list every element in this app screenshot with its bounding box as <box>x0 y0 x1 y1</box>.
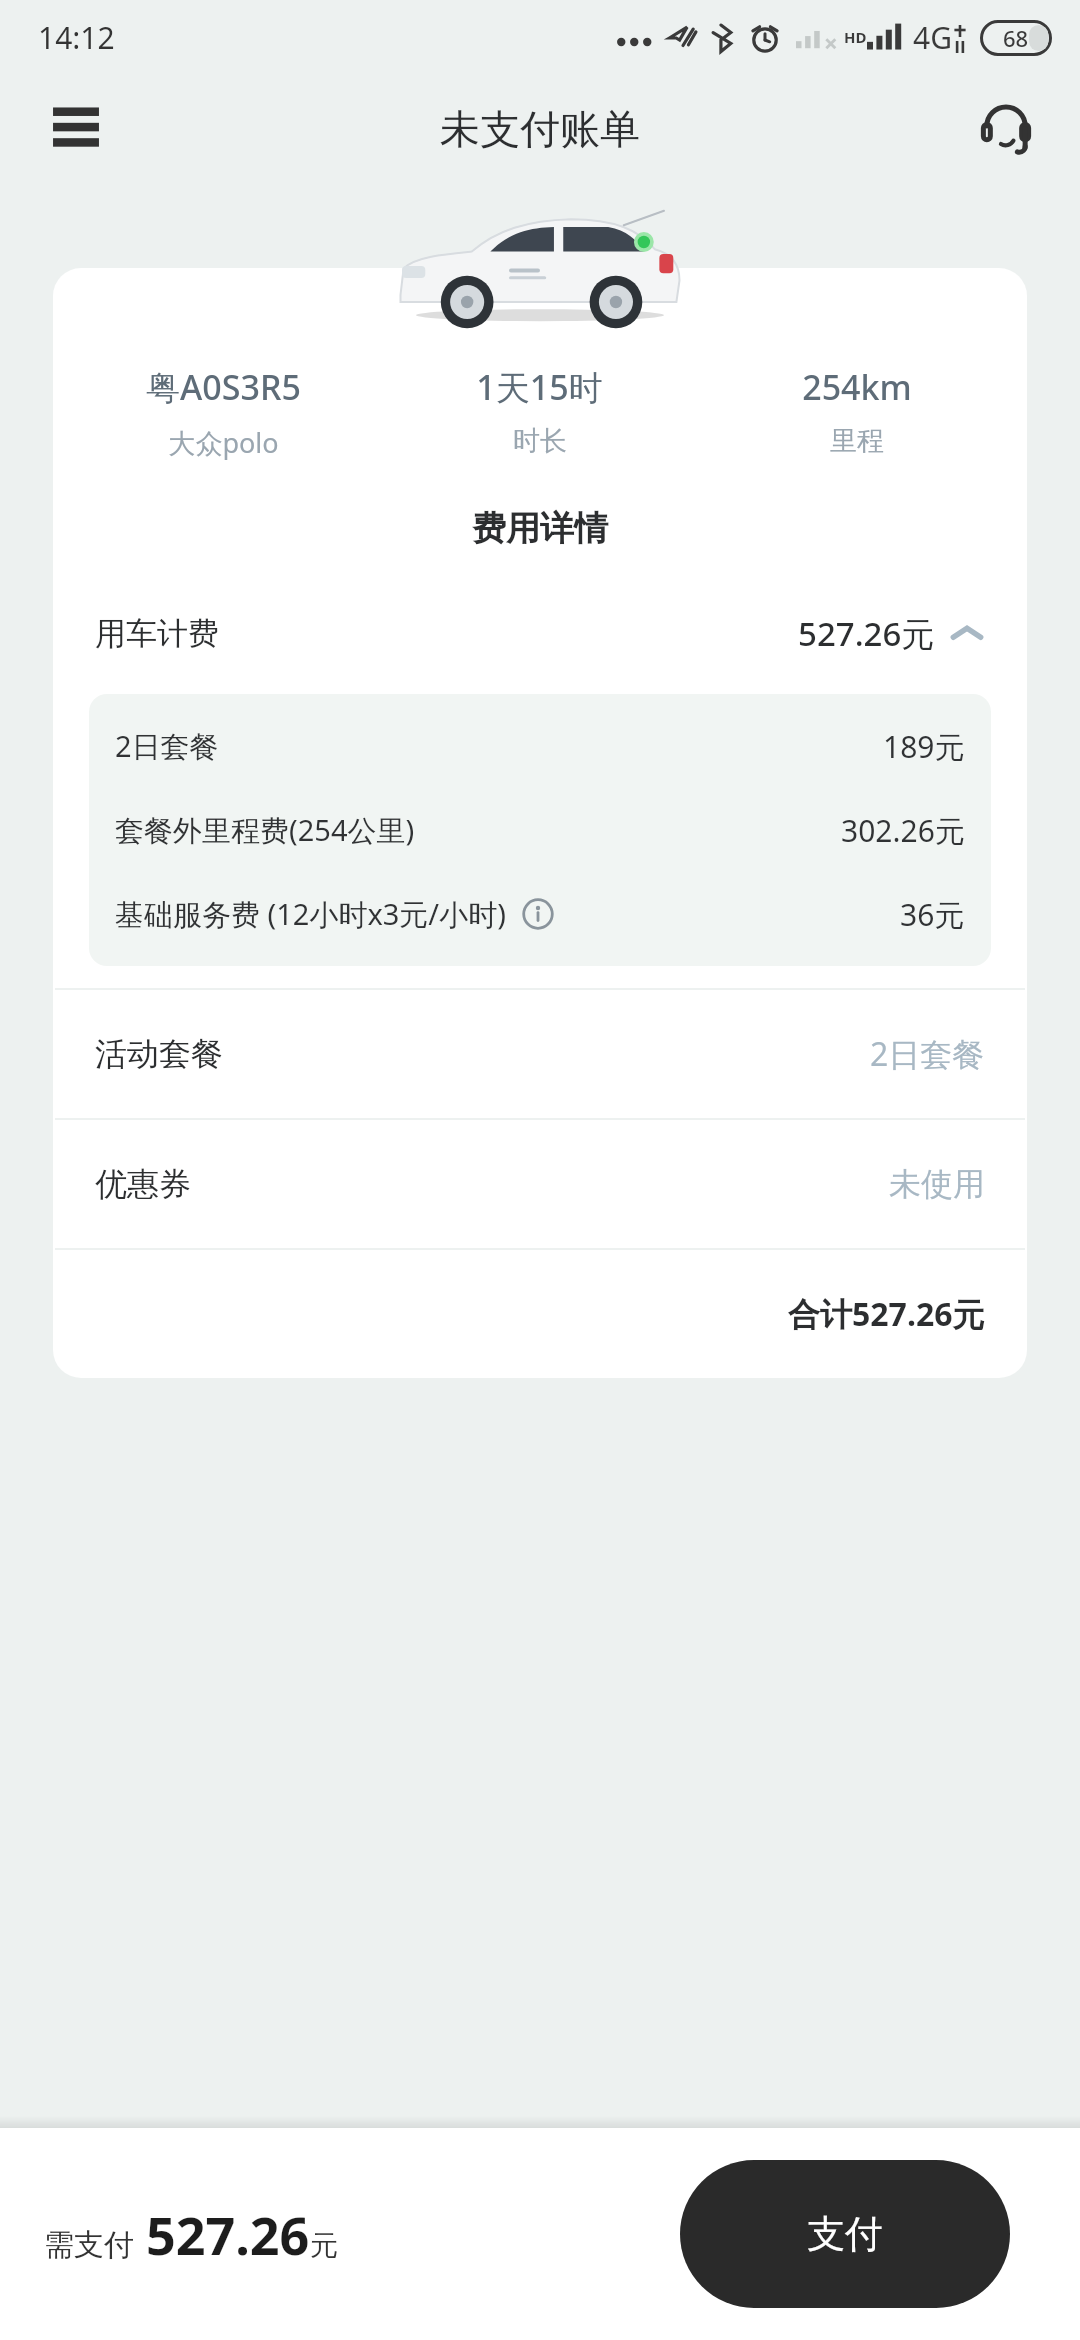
staticText: 2日套餐 <box>115 726 219 766</box>
staticText: 粤A0S3R5 <box>146 364 301 410</box>
button[interactable]: 优惠券 <box>53 1120 1027 1248</box>
button[interactable]: 活动套餐 <box>53 990 1027 1118</box>
staticText: 元 <box>310 2228 338 2263</box>
staticText: 189元 <box>883 726 965 767</box>
staticText: 优惠券 <box>95 1164 191 1204</box>
button[interactable]: Fee info <box>518 894 558 934</box>
staticText: 527.26元 <box>798 611 935 656</box>
staticText: 527.26 <box>146 2199 310 2270</box>
staticText: 68 <box>1003 23 1029 53</box>
staticText: 2日套餐 <box>870 1032 985 1076</box>
staticText: 支付 <box>807 2210 883 2258</box>
staticText: 时长 <box>513 424 567 458</box>
staticText: 活动套餐 <box>95 1034 223 1074</box>
staticText: 254km <box>802 364 912 410</box>
staticText: HD <box>844 27 867 47</box>
staticText: 4G <box>913 17 952 58</box>
button[interactable]: 用车计费 <box>53 590 1027 676</box>
staticText: 合计527.26元 <box>788 1292 985 1336</box>
staticText: 未使用 <box>889 1164 985 1204</box>
staticText: 14:12 <box>38 17 115 58</box>
staticText: 用车计费 <box>95 614 219 653</box>
staticText: 里程 <box>830 424 884 458</box>
button[interactable]: Customer service <box>962 85 1050 173</box>
staticText: 基础服务费 (12小时x3元/小时) <box>115 894 506 934</box>
staticText: 未支付账单 <box>440 104 640 154</box>
staticText: 36元 <box>900 894 965 935</box>
button[interactable]: Menu <box>34 87 118 171</box>
staticText: 套餐外里程费(254公里) <box>115 810 415 850</box>
staticText: 费用详情 <box>53 507 1027 550</box>
staticText: 302.26元 <box>841 810 965 851</box>
staticText: 1天15时 <box>476 364 603 410</box>
staticText: 需支付 <box>44 2226 134 2264</box>
button[interactable]: 支付 <box>680 2160 1010 2308</box>
staticText: 大众polo <box>168 424 279 461</box>
